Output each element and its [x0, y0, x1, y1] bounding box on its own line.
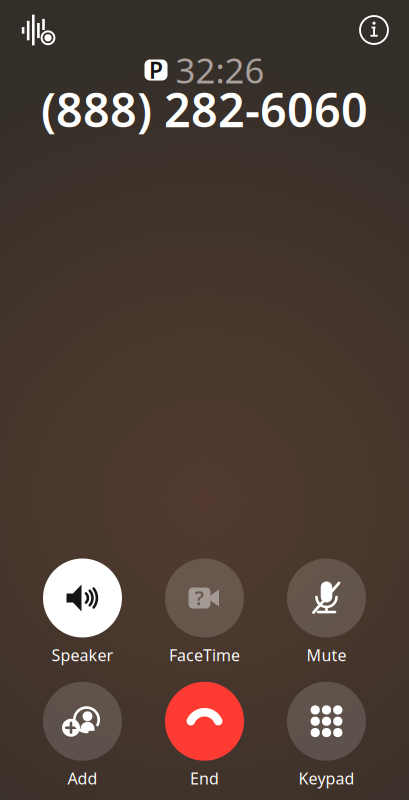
button[interactable]: ?	[149, 558, 259, 666]
staticText: Speaker	[51, 644, 113, 666]
button[interactable]: Mute	[271, 558, 381, 666]
staticText: P	[149, 55, 163, 85]
staticText: End	[190, 768, 219, 789]
staticText: Add	[67, 768, 97, 789]
button[interactable]: End	[149, 682, 259, 789]
staticText: Mute	[306, 644, 346, 666]
staticText: FaceTime	[169, 644, 240, 666]
button[interactable]: Call info	[359, 15, 389, 45]
staticText: Keypad	[298, 768, 354, 789]
staticText: (888) 282-6060	[41, 78, 368, 140]
button[interactable]: Keypad	[271, 682, 381, 789]
staticText: ?	[195, 584, 204, 611]
staticText: 32:26	[175, 47, 264, 93]
button[interactable]: Speaker	[27, 558, 137, 666]
button[interactable]: Add	[27, 682, 137, 789]
